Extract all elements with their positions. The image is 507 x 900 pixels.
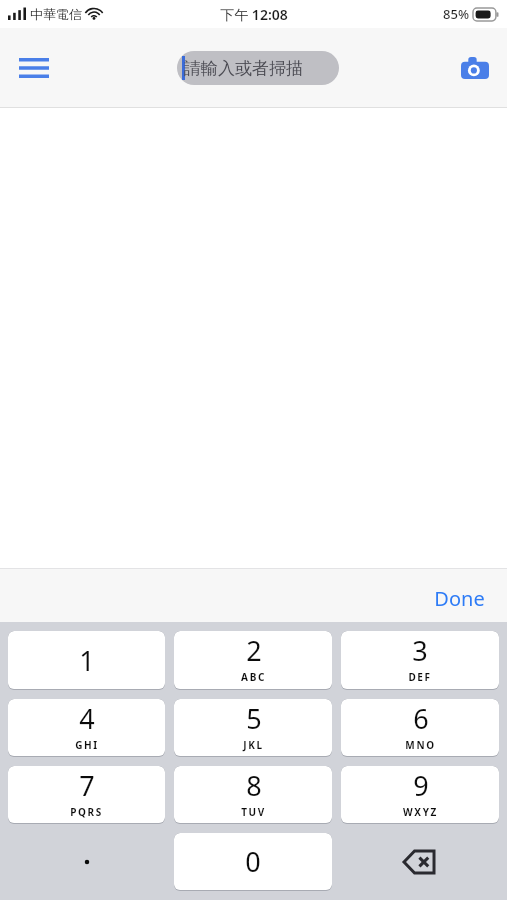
staticText: JKL bbox=[243, 738, 264, 752]
button[interactable]: 2 bbox=[174, 631, 332, 690]
button[interactable]: 7 bbox=[8, 766, 165, 824]
staticText: 8 bbox=[246, 767, 262, 804]
staticText: 4 bbox=[79, 700, 95, 737]
button[interactable]: Menu bbox=[10, 44, 58, 92]
staticText: 0 bbox=[245, 843, 261, 880]
button[interactable]: 4 bbox=[8, 699, 165, 757]
staticText: DEF bbox=[408, 670, 432, 684]
button[interactable]: 8 bbox=[174, 766, 332, 824]
button[interactable]: 9 bbox=[341, 766, 499, 824]
staticText: 下午 12:08 bbox=[220, 5, 288, 24]
button[interactable]: Scan with camera bbox=[451, 44, 499, 92]
staticText: GHI bbox=[75, 738, 99, 752]
staticText: Done bbox=[434, 585, 485, 612]
button[interactable]: 1 bbox=[8, 631, 165, 690]
button[interactable]: Delete bbox=[341, 833, 499, 891]
button[interactable]: 請輸入或者掃描 bbox=[177, 51, 339, 85]
staticText: MNO bbox=[405, 738, 436, 752]
staticText: PQRS bbox=[70, 805, 103, 819]
staticText: 3 bbox=[412, 632, 428, 669]
button[interactable]: 5 bbox=[174, 699, 332, 757]
staticText: 85% bbox=[443, 5, 469, 23]
staticText: 2 bbox=[246, 632, 262, 669]
staticText: ABC bbox=[241, 670, 266, 684]
staticText: 請輸入或者掃描 bbox=[184, 58, 303, 79]
staticText: 5 bbox=[246, 700, 262, 737]
button[interactable] bbox=[8, 833, 165, 891]
staticText: 6 bbox=[413, 700, 429, 737]
staticText: 中華電信 bbox=[30, 6, 82, 22]
button[interactable]: Done bbox=[428, 583, 491, 614]
button[interactable]: 3 bbox=[341, 631, 499, 690]
staticText: 9 bbox=[413, 767, 429, 804]
staticText: 7 bbox=[79, 767, 95, 804]
button[interactable]: 6 bbox=[341, 699, 499, 757]
staticText: 1 bbox=[79, 642, 95, 679]
staticText: WXYZ bbox=[403, 805, 438, 819]
button[interactable]: 0 bbox=[174, 833, 332, 891]
staticText: TUV bbox=[241, 805, 266, 819]
